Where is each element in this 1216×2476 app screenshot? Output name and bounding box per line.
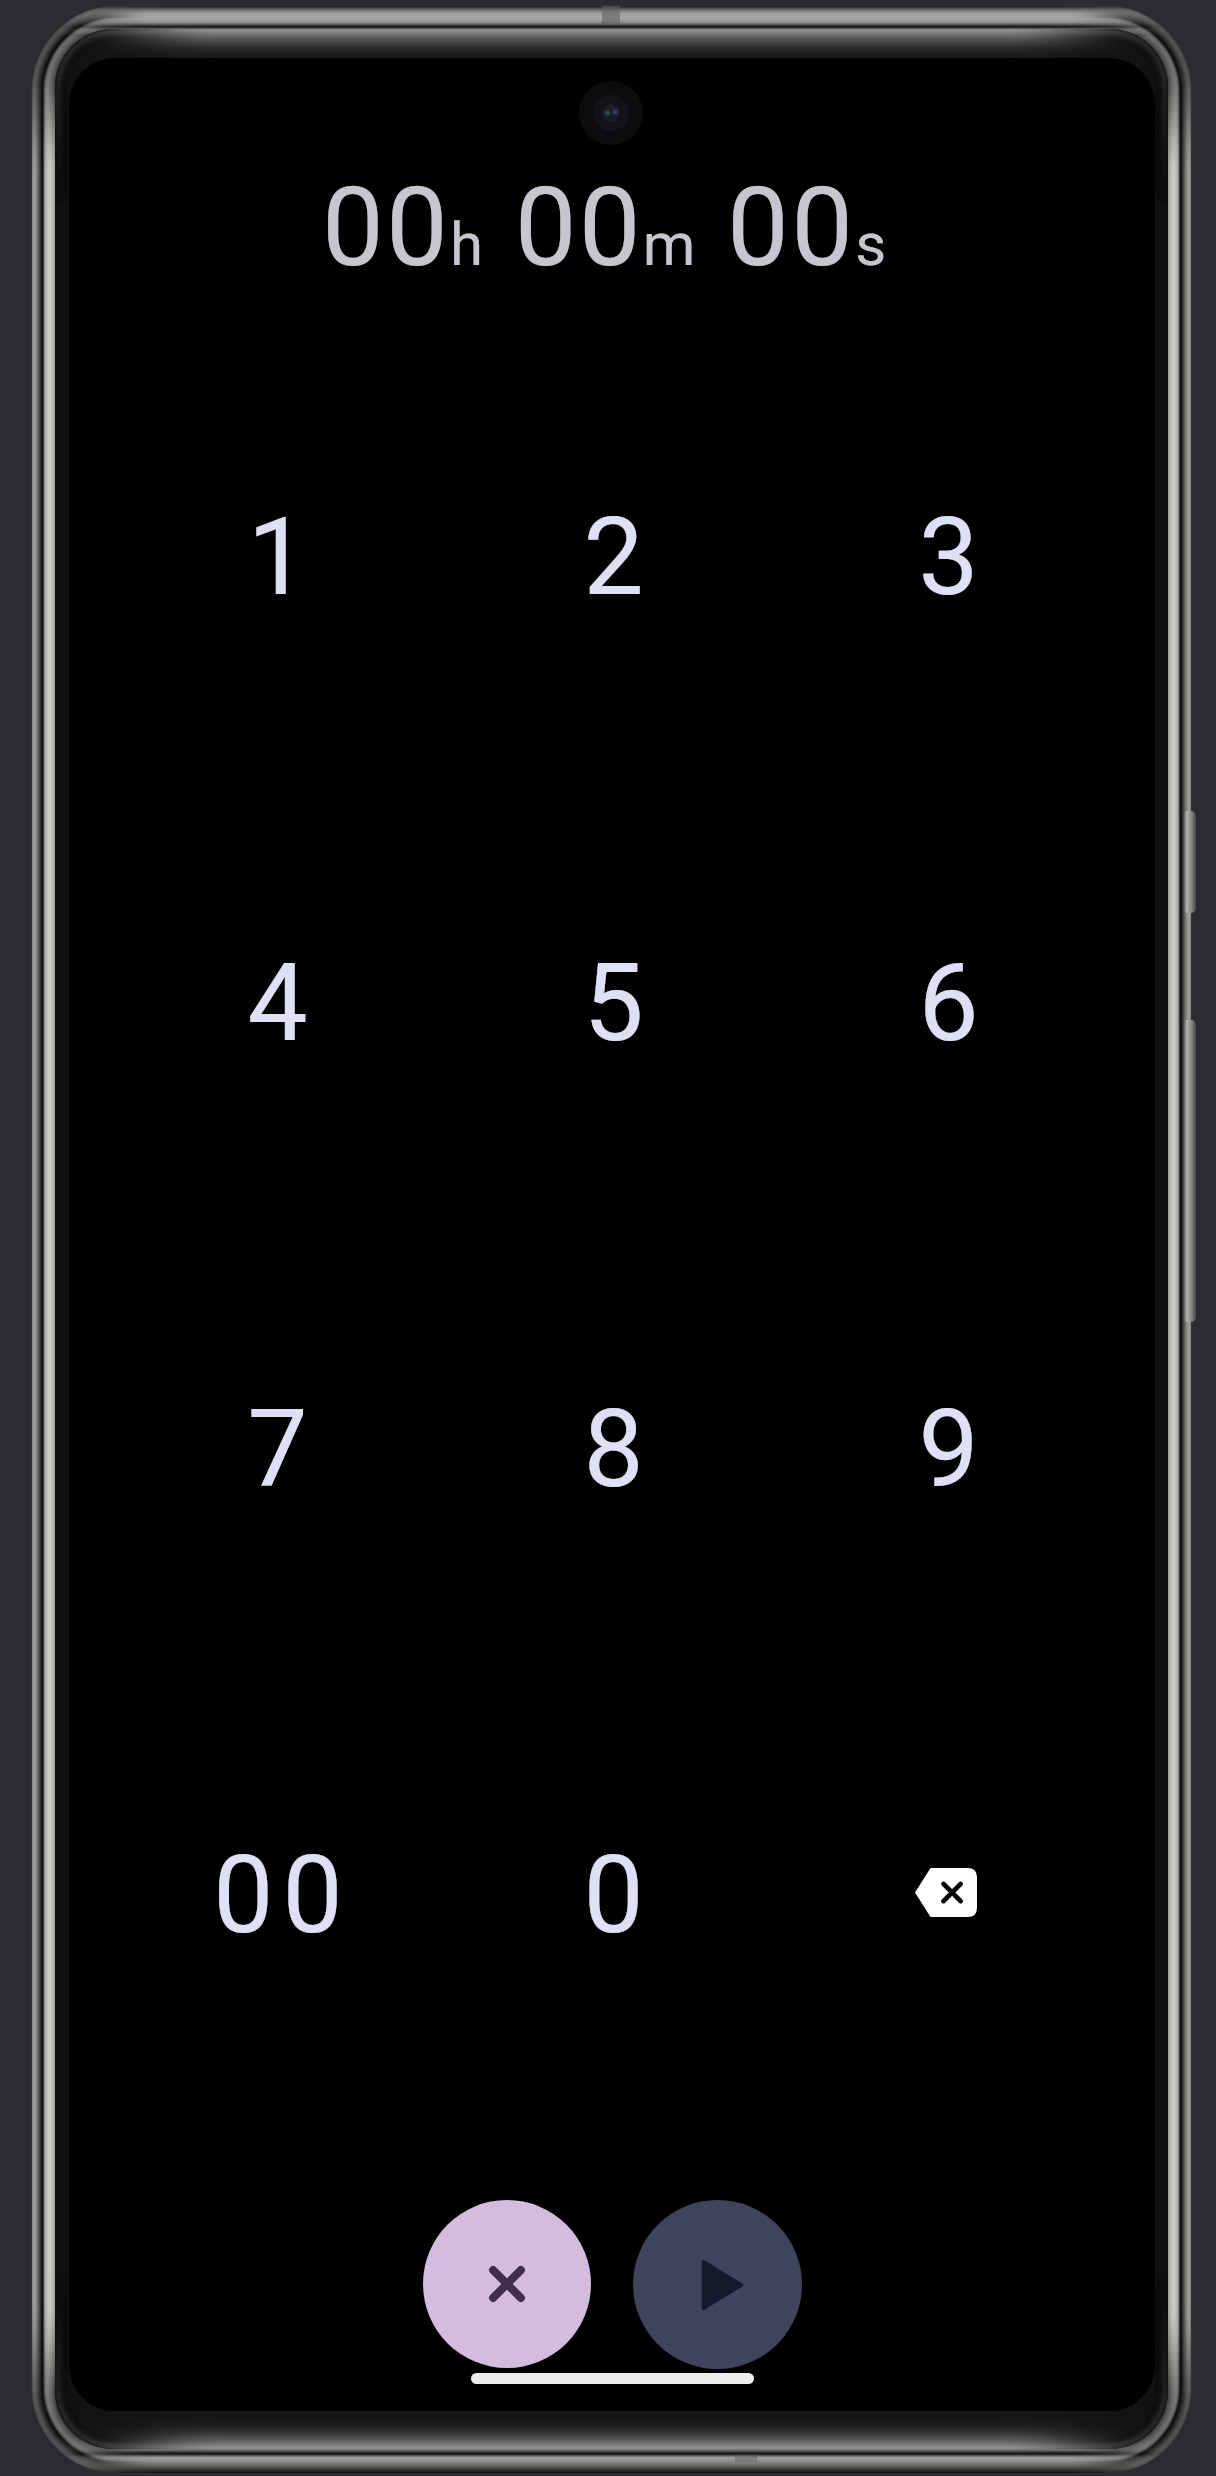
button[interactable]: 0 xyxy=(445,1668,780,2114)
button[interactable]: 00 xyxy=(109,1668,445,2114)
staticText: 5 xyxy=(583,941,653,1066)
button[interactable]: 8 xyxy=(445,1222,780,1668)
button[interactable]: 5 xyxy=(445,776,780,1222)
staticText: 3 xyxy=(918,495,988,620)
staticText: 00 xyxy=(213,1833,352,1958)
staticText: 0 xyxy=(583,1833,653,1958)
staticText: 00h 00m 00s xyxy=(322,163,889,292)
button[interactable]: Start xyxy=(633,2200,802,2369)
staticText: 8 xyxy=(583,1387,653,1512)
button[interactable]: 9 xyxy=(780,1222,1115,1668)
staticText: 6 xyxy=(918,941,988,1066)
button[interactable]: 1 xyxy=(109,330,445,776)
staticText: 9 xyxy=(918,1387,988,1512)
staticText: 4 xyxy=(247,941,317,1066)
staticText: 7 xyxy=(247,1387,317,1512)
button[interactable]: 3 xyxy=(780,330,1115,776)
staticText: 2 xyxy=(583,495,653,620)
staticText: 1 xyxy=(247,495,317,620)
button[interactable]: 2 xyxy=(445,330,780,776)
button[interactable]: Clear xyxy=(423,2200,591,2368)
button[interactable]: 4 xyxy=(109,776,445,1222)
button[interactable]: 7 xyxy=(109,1222,445,1668)
button[interactable]: 6 xyxy=(780,776,1115,1222)
button[interactable]: Backspace xyxy=(780,1668,1115,2114)
